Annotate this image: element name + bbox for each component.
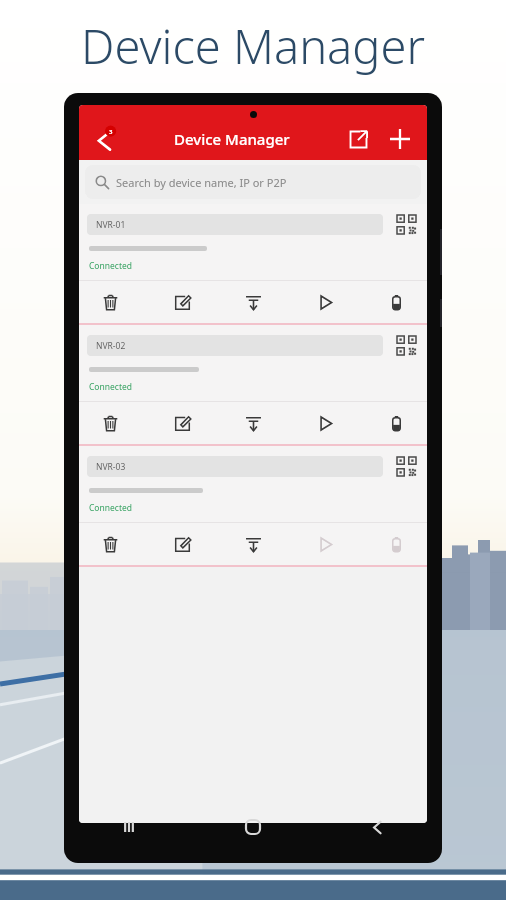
button[interactable]: Edit [159, 524, 205, 564]
button[interactable]: NVR-02 [79, 325, 427, 444]
button[interactable]: QR code [393, 211, 419, 237]
staticText: Connected [89, 502, 132, 514]
button[interactable]: Upgrade [230, 524, 276, 564]
button[interactable]: Play [302, 403, 348, 443]
button[interactable]: NVR-03 [79, 446, 427, 565]
staticText: 3 [109, 128, 113, 136]
button[interactable]: Storage [373, 282, 419, 322]
button[interactable]: Upgrade [230, 403, 276, 443]
button[interactable]: Home [236, 810, 270, 844]
button[interactable]: QR code [393, 453, 419, 479]
button[interactable]: Delete [87, 282, 133, 322]
staticText: Device Manager [174, 129, 290, 149]
button[interactable]: Delete [87, 403, 133, 443]
staticText: NVR-03 [96, 461, 126, 473]
staticText: Device Manager [81, 14, 425, 78]
staticText: NVR-02 [96, 340, 126, 352]
button[interactable]: Search by device name, IP or P2P [85, 165, 421, 199]
button[interactable]: Recents [112, 810, 146, 844]
staticText: Connected [89, 260, 132, 272]
button[interactable]: Edit [159, 403, 205, 443]
button[interactable]: Export [339, 120, 377, 158]
button[interactable]: Play [302, 524, 348, 564]
staticText: NVR-01 [96, 219, 126, 231]
staticText: Search by device name, IP or P2P [116, 175, 287, 190]
button[interactable]: Play [302, 282, 348, 322]
button[interactable]: Back [85, 119, 125, 159]
button[interactable]: Upgrade [230, 282, 276, 322]
button[interactable]: Delete [87, 524, 133, 564]
button[interactable]: NVR-01 [79, 204, 427, 323]
button[interactable]: Edit [159, 282, 205, 322]
button[interactable]: Back [360, 810, 394, 844]
staticText: Connected [89, 381, 132, 393]
button[interactable]: QR code [393, 332, 419, 358]
button[interactable]: Add device [381, 120, 419, 158]
button[interactable]: Storage [373, 403, 419, 443]
button[interactable]: Storage [373, 524, 419, 564]
